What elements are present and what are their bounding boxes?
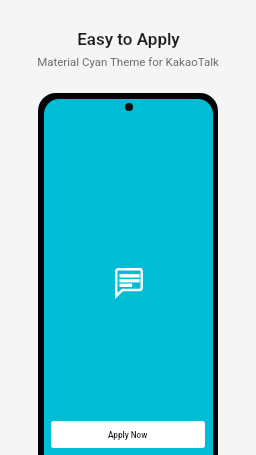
other: Messages (115, 268, 143, 297)
button[interactable]: Apply Now (51, 421, 205, 448)
staticText: Apply Now (108, 430, 148, 440)
staticText: Easy to Apply (77, 29, 180, 49)
staticText: Material Cyan Theme for KakaoTalk (37, 55, 219, 68)
